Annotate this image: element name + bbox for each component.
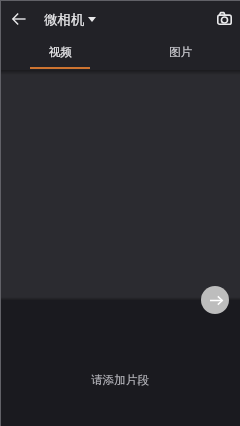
button[interactable]: 图片 bbox=[120, 38, 240, 70]
staticText: 微相机 bbox=[44, 11, 85, 28]
button[interactable]: 微相机 bbox=[40, 5, 104, 33]
button[interactable]: Camera bbox=[210, 4, 238, 32]
staticText: 请添加片段 bbox=[91, 373, 149, 388]
staticText: 图片 bbox=[169, 45, 192, 59]
button[interactable]: 视频 bbox=[0, 38, 120, 70]
staticText: 视频 bbox=[49, 45, 72, 59]
button[interactable]: Back bbox=[5, 5, 33, 33]
button[interactable]: Next bbox=[201, 286, 229, 314]
